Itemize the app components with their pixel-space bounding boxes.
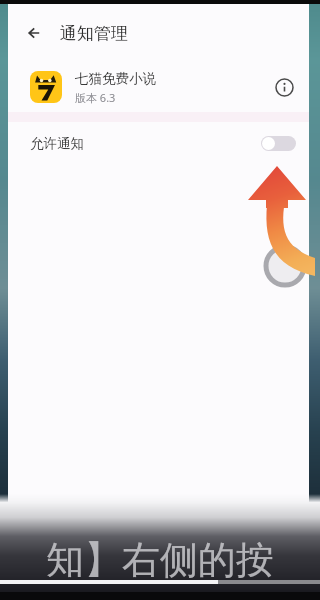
staticText: 七猫免费小说 (75, 70, 156, 87)
button[interactable]: 七猫免费小说 (8, 62, 309, 112)
staticText: 允许通知 (30, 135, 84, 152)
button[interactable]: Back (22, 19, 50, 47)
button[interactable]: App info (267, 70, 301, 104)
button[interactable]: 允许通知 (8, 122, 309, 164)
staticText: 版本 6.3 (75, 90, 116, 105)
staticText: 通知管理 (60, 23, 128, 44)
staticText: 知】右侧的按 (46, 536, 274, 584)
button[interactable]: Allow notifications toggle (261, 136, 296, 151)
